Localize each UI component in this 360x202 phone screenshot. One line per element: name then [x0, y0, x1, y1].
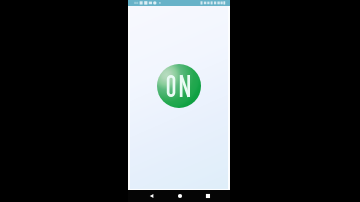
button[interactable]: Power ON	[157, 64, 201, 108]
